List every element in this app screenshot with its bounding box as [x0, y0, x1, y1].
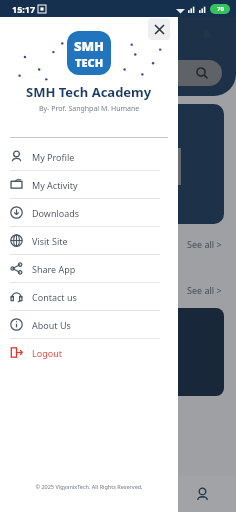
button[interactable]: My Profile	[0, 143, 178, 170]
button[interactable]: Contact us	[0, 283, 178, 310]
staticText: © 2025 VigyanixTech. All Rights Reserved…	[0, 483, 178, 490]
staticText: Visit Site	[32, 235, 68, 247]
staticText: SMH Tech Academy	[26, 83, 152, 101]
button[interactable]: Visit Site	[0, 227, 178, 254]
staticText: Share App	[32, 263, 76, 275]
staticText: TECH	[52, 129, 185, 200]
staticText: MACHI	[89, 332, 157, 358]
staticText: Downloads	[32, 207, 80, 219]
staticText: 70	[217, 5, 224, 13]
staticText: SMH	[74, 37, 105, 55]
button[interactable]: Downloads	[0, 199, 178, 226]
staticText: See all >	[187, 238, 222, 250]
staticText: By- Prof. Sanghpal M. Humane	[39, 104, 140, 114]
staticText: Logout	[32, 347, 62, 359]
button[interactable]: Close drawer	[148, 18, 170, 40]
staticText: Contact us	[32, 291, 77, 303]
staticText: My Activity	[32, 179, 78, 191]
staticText: TECH	[75, 55, 104, 70]
button[interactable]: About Us	[0, 311, 178, 338]
staticText: About Us	[32, 319, 71, 331]
button[interactable]: My Activity	[0, 171, 178, 198]
staticText: My Profile	[32, 151, 75, 163]
staticText: See all >	[187, 284, 222, 296]
staticText: 15:17	[12, 3, 36, 15]
button[interactable]: Share App	[0, 255, 178, 282]
button[interactable]: Logout	[0, 339, 178, 366]
